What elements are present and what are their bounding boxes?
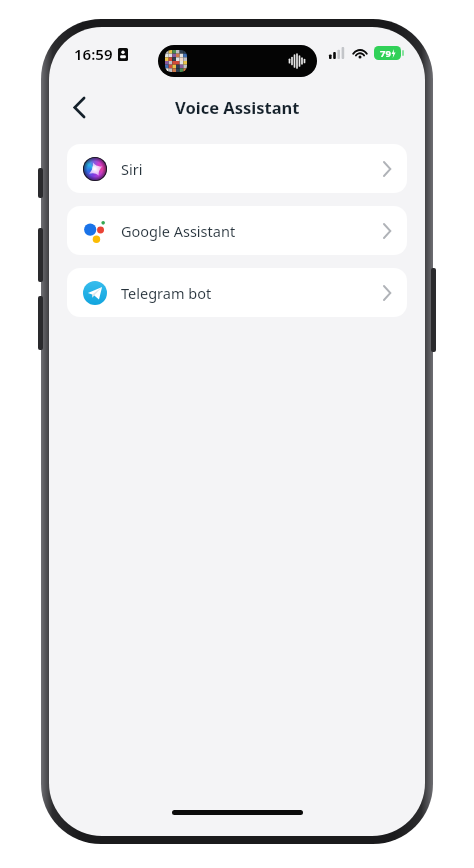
staticText: Telegram bot [121, 283, 212, 303]
button[interactable]: Telegram bot [67, 268, 407, 317]
staticText: Google Assistant [121, 221, 236, 241]
button[interactable]: Siri [67, 144, 407, 193]
staticText: Siri [121, 159, 143, 179]
staticText: Voice Assistant [175, 96, 300, 118]
button[interactable]: Back [57, 92, 101, 122]
staticText: 79 [380, 47, 391, 60]
staticText: 16:59 [74, 44, 113, 64]
button[interactable]: Google Assistant [67, 206, 407, 255]
